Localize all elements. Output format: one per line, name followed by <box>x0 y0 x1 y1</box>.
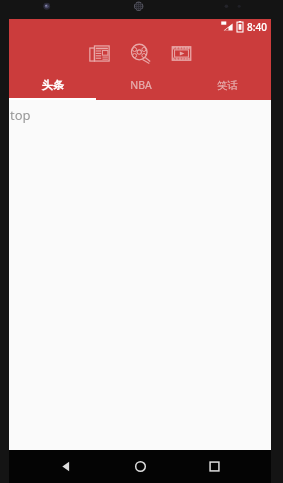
button[interactable]: Movies <box>126 39 154 67</box>
staticText: top <box>10 106 31 124</box>
staticText: 头条 <box>42 78 64 92</box>
button[interactable]: 头条 <box>9 71 97 100</box>
button[interactable]: Recent apps <box>197 450 231 483</box>
button[interactable]: Video <box>167 39 195 67</box>
button[interactable]: NBA <box>97 71 184 100</box>
staticText: 笑话 <box>217 79 238 92</box>
button[interactable]: Back <box>49 450 83 483</box>
button[interactable]: Home <box>123 450 157 483</box>
staticText: NBA <box>130 78 152 92</box>
staticText: 8:40 <box>247 20 267 34</box>
button[interactable]: 笑话 <box>184 71 271 100</box>
button[interactable]: News <box>85 39 113 67</box>
